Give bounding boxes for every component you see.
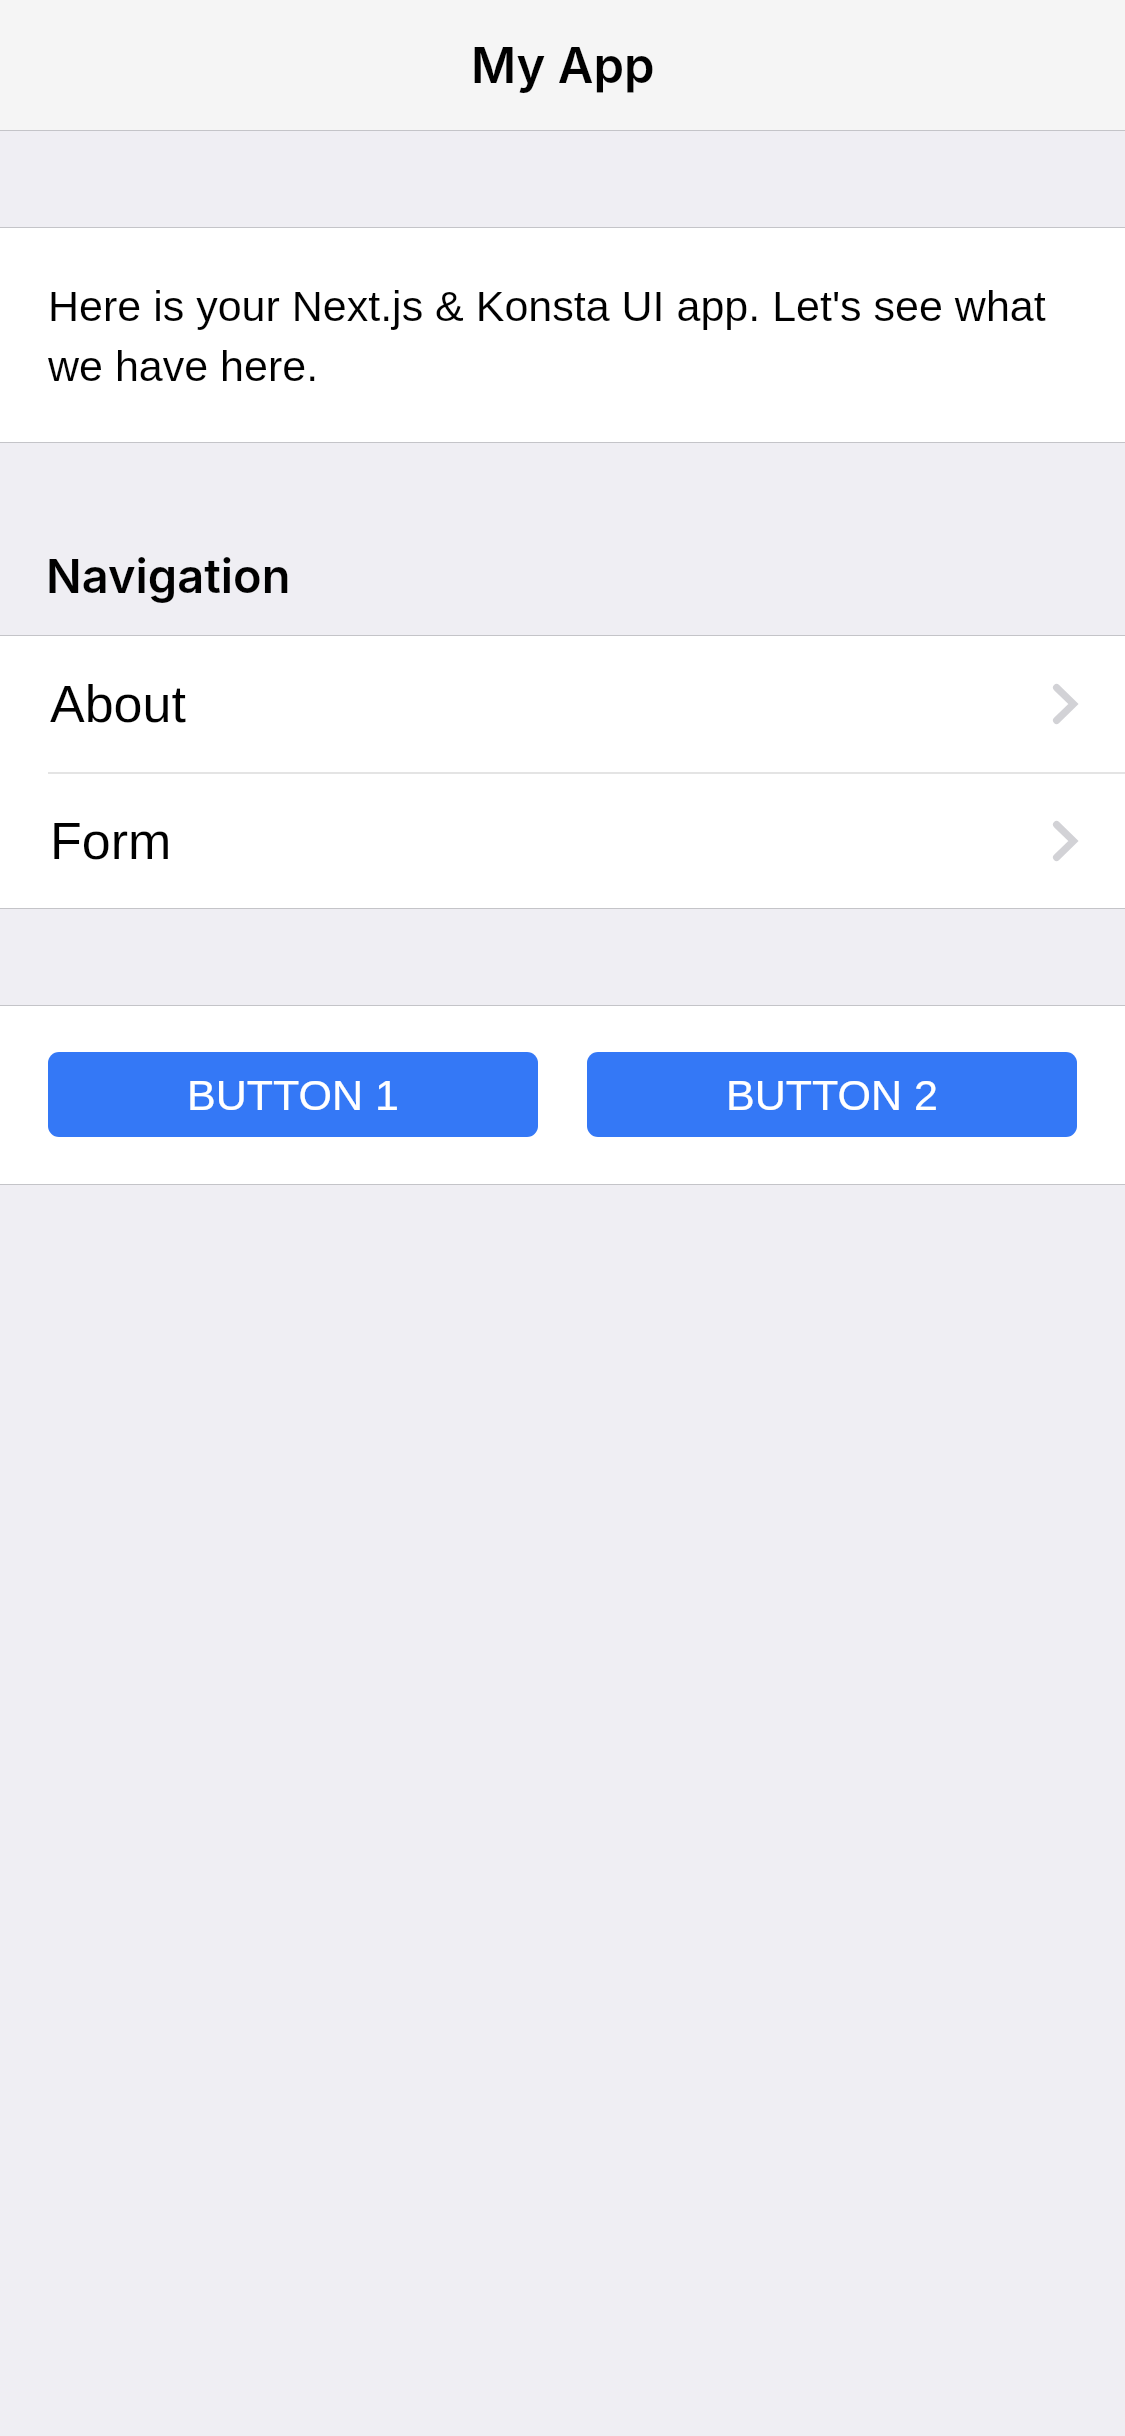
button[interactable]: Form	[0, 774, 1125, 908]
staticText: BUTTON 2	[726, 1071, 938, 1119]
staticText: Navigation	[46, 547, 291, 604]
staticText: Here is your Next.js & Konsta UI app. Le…	[48, 282, 1091, 390]
staticText: My App	[471, 36, 655, 95]
other: Open About	[1053, 684, 1077, 724]
button[interactable]: BUTTON 1	[48, 1052, 538, 1137]
staticText: About	[50, 675, 186, 733]
other: Open Form	[1053, 821, 1077, 861]
staticText: BUTTON 1	[187, 1071, 399, 1119]
button[interactable]: About	[0, 636, 1125, 772]
button[interactable]: BUTTON 2	[587, 1052, 1077, 1137]
staticText: Form	[50, 812, 172, 870]
